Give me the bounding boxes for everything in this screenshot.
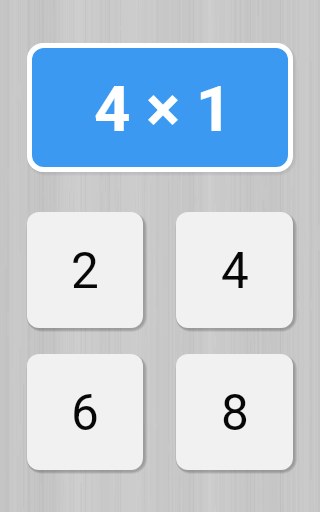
- staticText: 4: [221, 242, 249, 300]
- staticText: 2: [71, 242, 99, 300]
- button[interactable]: 6: [27, 354, 143, 470]
- staticText: 6: [71, 384, 99, 442]
- button[interactable]: 8: [176, 354, 293, 470]
- button[interactable]: 4: [176, 212, 293, 328]
- staticText: 8: [221, 384, 249, 442]
- button[interactable]: 4 × 1: [27, 43, 293, 172]
- button[interactable]: 2: [27, 212, 143, 328]
- staticText: 4 × 1: [94, 72, 233, 146]
